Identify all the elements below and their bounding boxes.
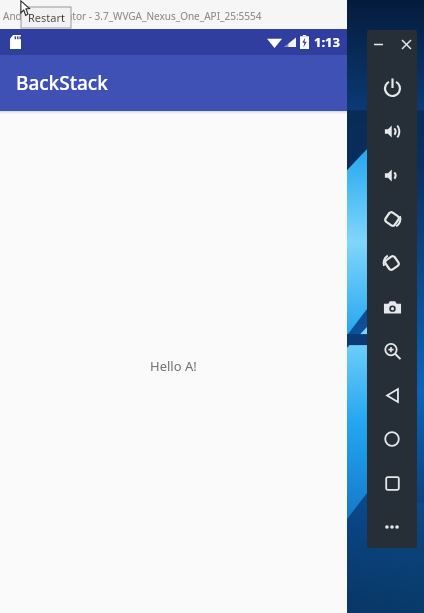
staticText: Android Emulator - 3.7_WVGA_Nexus_One_AP… xyxy=(3,9,262,23)
button[interactable]: BackStack xyxy=(0,55,347,111)
button[interactable]: Volume up xyxy=(367,109,417,153)
staticText: Hello A! xyxy=(150,357,197,375)
button[interactable]: Home xyxy=(367,417,417,461)
button[interactable]: Volume down xyxy=(367,153,417,197)
button[interactable]: Close xyxy=(396,34,416,54)
staticText: Restart xyxy=(28,10,65,25)
button[interactable]: Rotate right xyxy=(367,241,417,285)
button[interactable]: Overview xyxy=(367,461,417,505)
button[interactable]: Zoom xyxy=(367,329,417,373)
button[interactable]: Rotate left xyxy=(367,197,417,241)
button[interactable]: Power xyxy=(367,65,417,109)
button[interactable]: Minimize xyxy=(368,34,388,54)
staticText: 1:13 xyxy=(314,33,340,51)
button[interactable]: Back xyxy=(367,373,417,417)
button[interactable]: Take screenshot xyxy=(367,285,417,329)
staticText: BackStack xyxy=(16,70,108,96)
button[interactable]: More xyxy=(367,505,417,548)
